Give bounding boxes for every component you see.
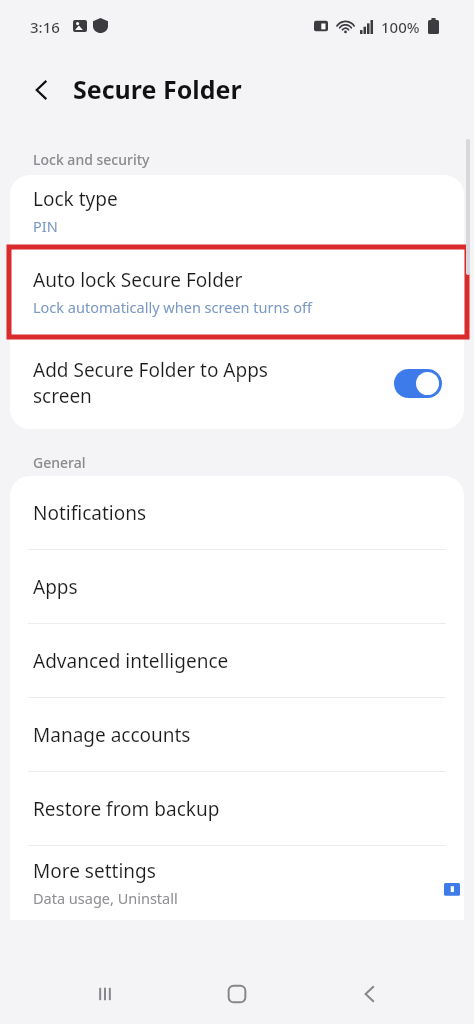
staticText: Restore from backup xyxy=(33,796,220,822)
button[interactable]: Restore from backup xyxy=(10,772,464,845)
button[interactable]: Add Secure Folder to Apps screen xyxy=(10,337,464,429)
staticText: Secure Folder xyxy=(73,72,242,106)
button[interactable]: Apps xyxy=(10,550,464,623)
staticText: Manage accounts xyxy=(33,722,191,748)
staticText: Lock type xyxy=(33,186,118,212)
button[interactable]: Back xyxy=(340,964,400,1024)
button[interactable]: Home xyxy=(207,964,267,1024)
staticText: Data usage, Uninstall xyxy=(33,888,178,908)
staticText: 3:16 xyxy=(30,17,60,37)
button[interactable]: More settings xyxy=(10,846,464,920)
staticText: Apps xyxy=(33,574,78,600)
staticText: Lock and security xyxy=(33,150,150,169)
staticText: 100% xyxy=(381,17,420,37)
button[interactable]: Notifications xyxy=(10,476,464,549)
button[interactable]: Manage accounts xyxy=(10,698,464,771)
button[interactable]: Back xyxy=(18,66,66,114)
button[interactable]: Recents xyxy=(75,964,135,1024)
staticText: Auto lock Secure Folder xyxy=(33,267,243,293)
button[interactable]: Lock type xyxy=(10,175,464,247)
staticText: Notifications xyxy=(33,500,147,526)
staticText: Advanced intelligence xyxy=(33,648,229,674)
staticText: Lock automatically when screen turns off xyxy=(33,297,312,317)
staticText: More settings xyxy=(33,858,156,884)
button[interactable]: Advanced intelligence xyxy=(10,624,464,697)
staticText: PIN xyxy=(33,216,58,236)
button[interactable]: Auto lock Secure Folder xyxy=(10,247,464,337)
staticText: Add Secure Folder to Apps screen xyxy=(33,357,384,409)
staticText: General xyxy=(33,453,86,472)
